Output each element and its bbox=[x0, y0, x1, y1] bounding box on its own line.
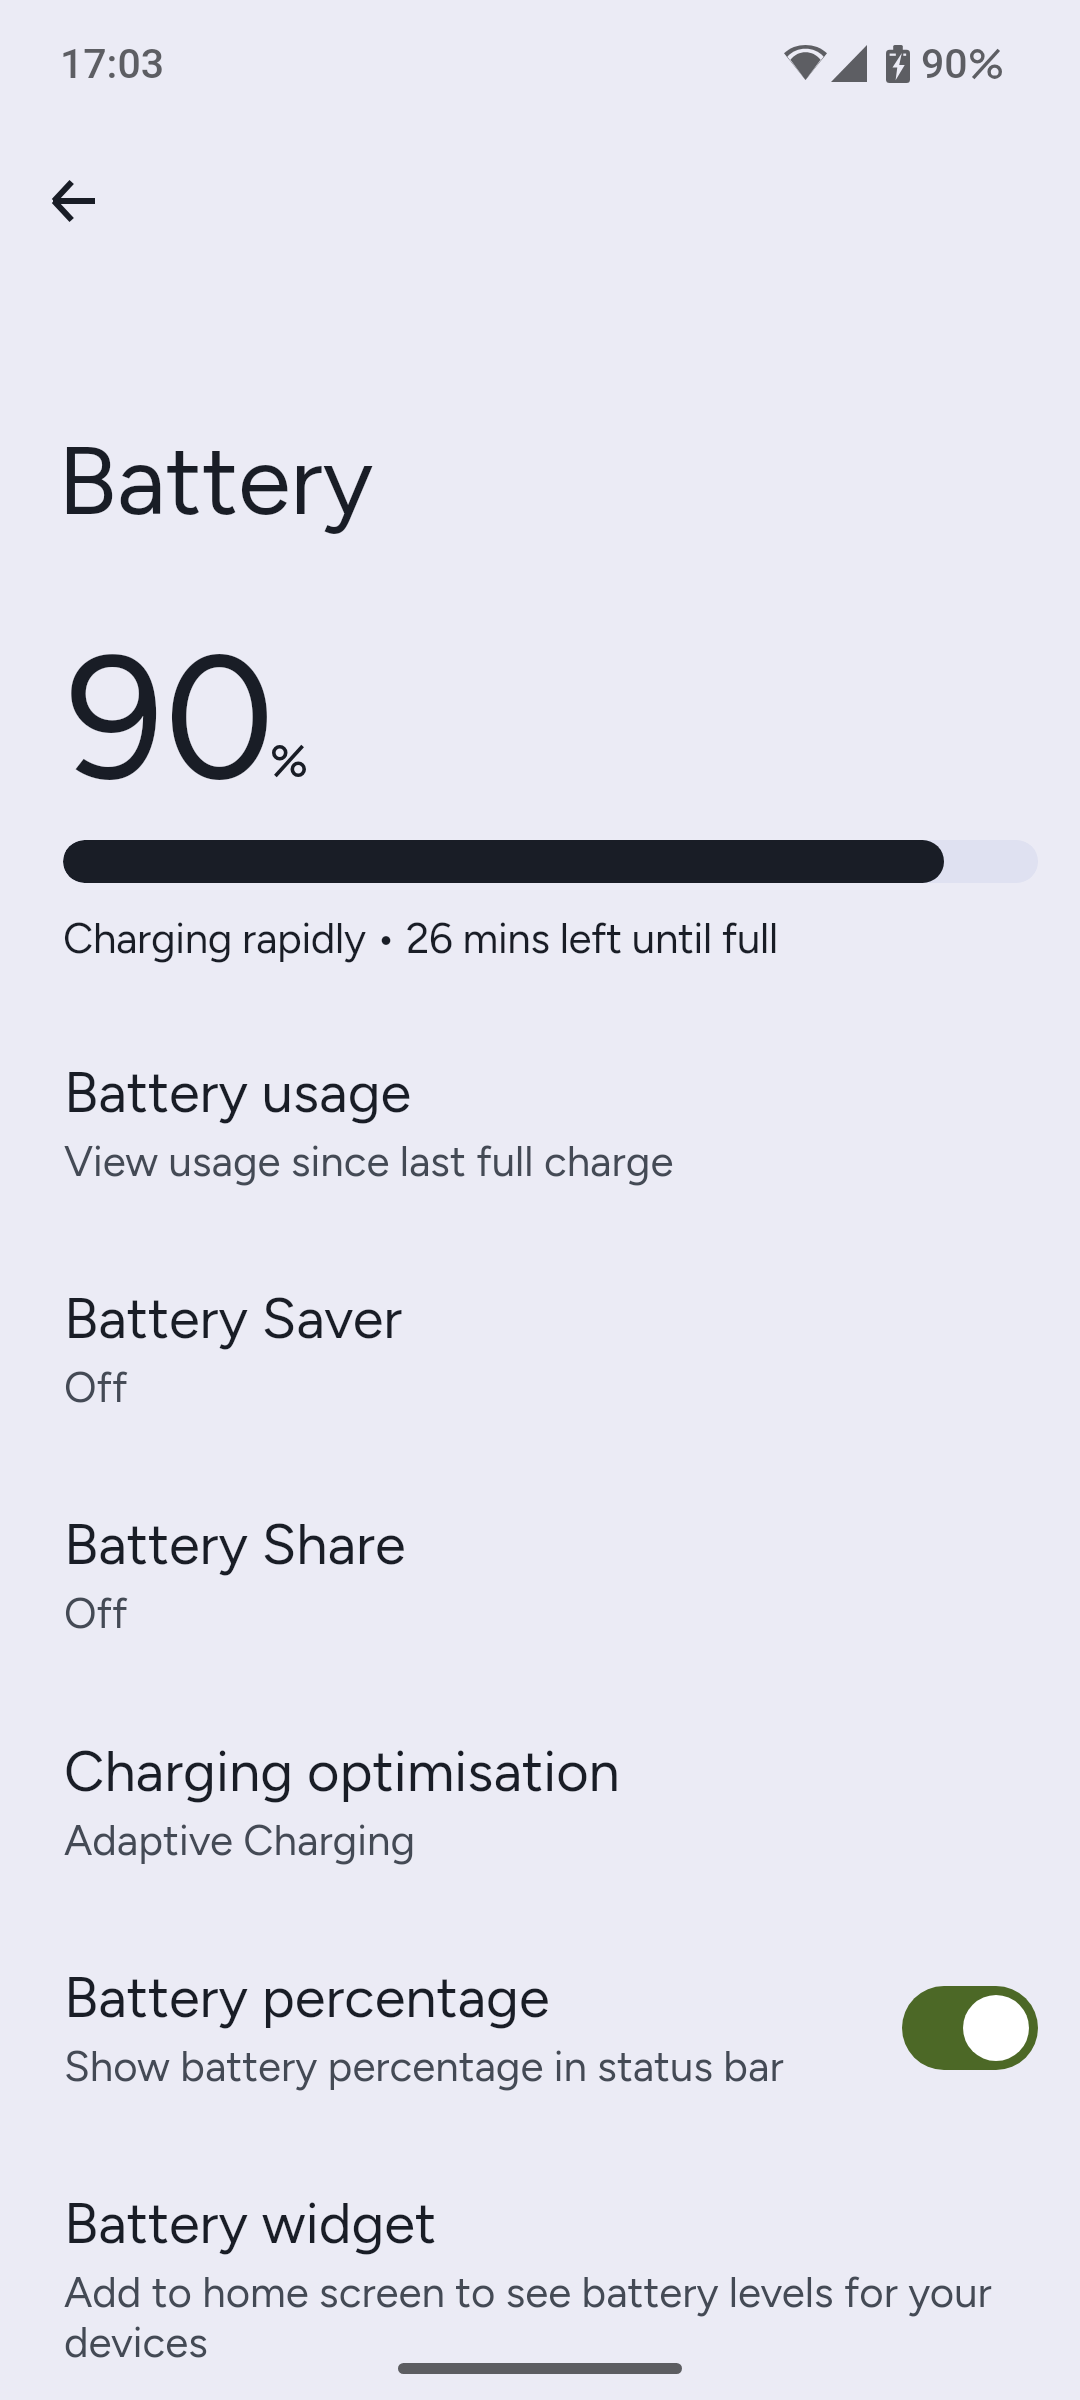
staticText: View usage since last full charge bbox=[64, 1136, 674, 1186]
staticText: Add to home screen to see battery levels… bbox=[64, 2267, 992, 2367]
button[interactable]: Battery percentage bbox=[902, 1986, 1038, 2070]
staticText: Charging rapidly • 26 mins left until fu… bbox=[63, 913, 778, 963]
staticText: Show battery percentage in status bar bbox=[64, 2041, 784, 2091]
button[interactable]: Battery widget bbox=[0, 2144, 1080, 2344]
button[interactable]: Battery percentage bbox=[0, 1918, 1080, 2090]
staticText: Battery percentage bbox=[64, 1964, 550, 2031]
staticText: Battery Share bbox=[64, 1511, 406, 1578]
staticText: Battery widget bbox=[64, 2190, 437, 2257]
staticText: 90 bbox=[66, 614, 275, 822]
staticText: Battery usage bbox=[64, 1059, 412, 1126]
staticText: Battery Saver bbox=[64, 1285, 403, 1352]
staticText: 17:03 bbox=[60, 40, 165, 88]
staticText: 90 bbox=[921, 40, 968, 88]
button[interactable]: Charging optimisation bbox=[0, 1692, 1080, 1864]
button[interactable]: Back bbox=[25, 153, 121, 249]
staticText: Adaptive Charging bbox=[64, 1815, 416, 1865]
button[interactable]: Battery usage bbox=[0, 1013, 1080, 1185]
staticText: Charging optimisation bbox=[64, 1738, 620, 1805]
button[interactable]: Battery Share bbox=[0, 1465, 1080, 1637]
staticText: Battery bbox=[58, 423, 374, 538]
staticText: Off bbox=[64, 1362, 128, 1412]
staticText: Off bbox=[64, 1588, 128, 1638]
button[interactable]: Battery Saver bbox=[0, 1239, 1080, 1411]
